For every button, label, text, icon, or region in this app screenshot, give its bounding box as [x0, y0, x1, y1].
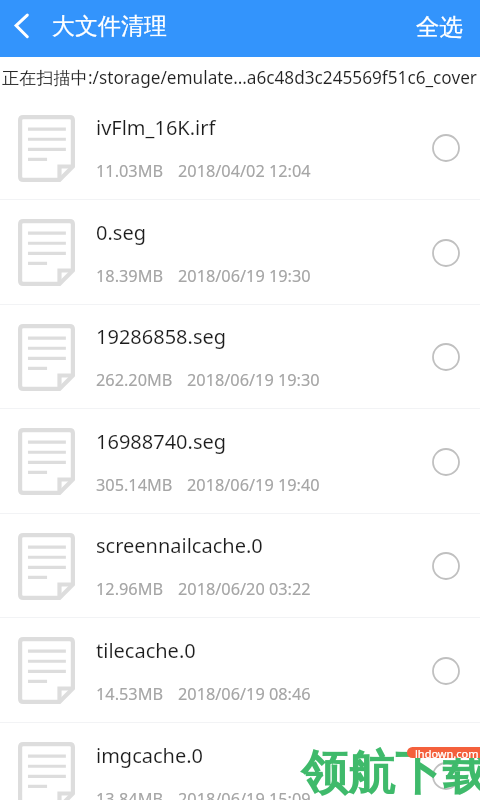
- staticText: imgcache.0: [96, 742, 204, 769]
- button[interactable]: Select screennailcache.0: [412, 514, 480, 618]
- button[interactable]: Back: [0, 0, 46, 57]
- staticText: lhdown.com: [415, 746, 479, 761]
- button[interactable]: 19286858.seg: [0, 305, 480, 409]
- staticText: 18.39MB: [96, 265, 164, 287]
- staticText: 2018/06/20 03:22: [178, 578, 311, 600]
- button[interactable]: 全选: [396, 0, 480, 57]
- staticText: 2018/06/19 08:46: [178, 683, 311, 705]
- staticText: 11.03MB: [96, 160, 164, 182]
- staticText: tilecache.0: [96, 637, 196, 664]
- staticText: 19286858.seg: [96, 323, 227, 350]
- button[interactable]: Select ivFlm_16K.irf: [412, 96, 480, 200]
- staticText: 2018/06/19 19:40: [187, 474, 320, 496]
- button[interactable]: Select 19286858.seg: [412, 305, 480, 409]
- button[interactable]: tilecache.0: [0, 618, 480, 723]
- staticText: 2018/04/02 12:04: [178, 160, 311, 182]
- staticText: 全选: [416, 12, 463, 42]
- staticText: 领航下载: [301, 744, 480, 800]
- staticText: 0.seg: [96, 219, 146, 246]
- staticText: 2018/06/19 15:09: [178, 788, 311, 800]
- staticText: 262.20MB: [96, 369, 173, 391]
- staticText: ivFlm_16K.irf: [96, 114, 216, 141]
- button[interactable]: imgcache.0: [0, 723, 480, 800]
- button[interactable]: 0.seg: [0, 200, 480, 305]
- button[interactable]: screennailcache.0: [0, 514, 480, 618]
- staticText: screennailcache.0: [96, 532, 263, 559]
- button[interactable]: Select 16988740.seg: [412, 409, 480, 514]
- staticText: 14.53MB: [96, 683, 164, 705]
- staticText: 12.96MB: [96, 578, 164, 600]
- staticText: 大文件清理: [52, 12, 167, 41]
- button[interactable]: Select imgcache.0: [412, 723, 480, 800]
- staticText: 305.14MB: [96, 474, 173, 496]
- staticText: 2018/06/19 19:30: [178, 265, 311, 287]
- staticText: 16988740.seg: [96, 428, 227, 455]
- staticText: 正在扫描中:/storage/emulate…a6c48d3c245569f51…: [2, 66, 480, 89]
- button[interactable]: 16988740.seg: [0, 409, 480, 514]
- button[interactable]: Select 0.seg: [412, 200, 480, 305]
- staticText: 2018/06/19 19:30: [187, 369, 320, 391]
- button[interactable]: Select tilecache.0: [412, 618, 480, 723]
- button[interactable]: ivFlm_16K.irf: [0, 96, 480, 200]
- staticText: 13.84MB: [96, 788, 164, 800]
